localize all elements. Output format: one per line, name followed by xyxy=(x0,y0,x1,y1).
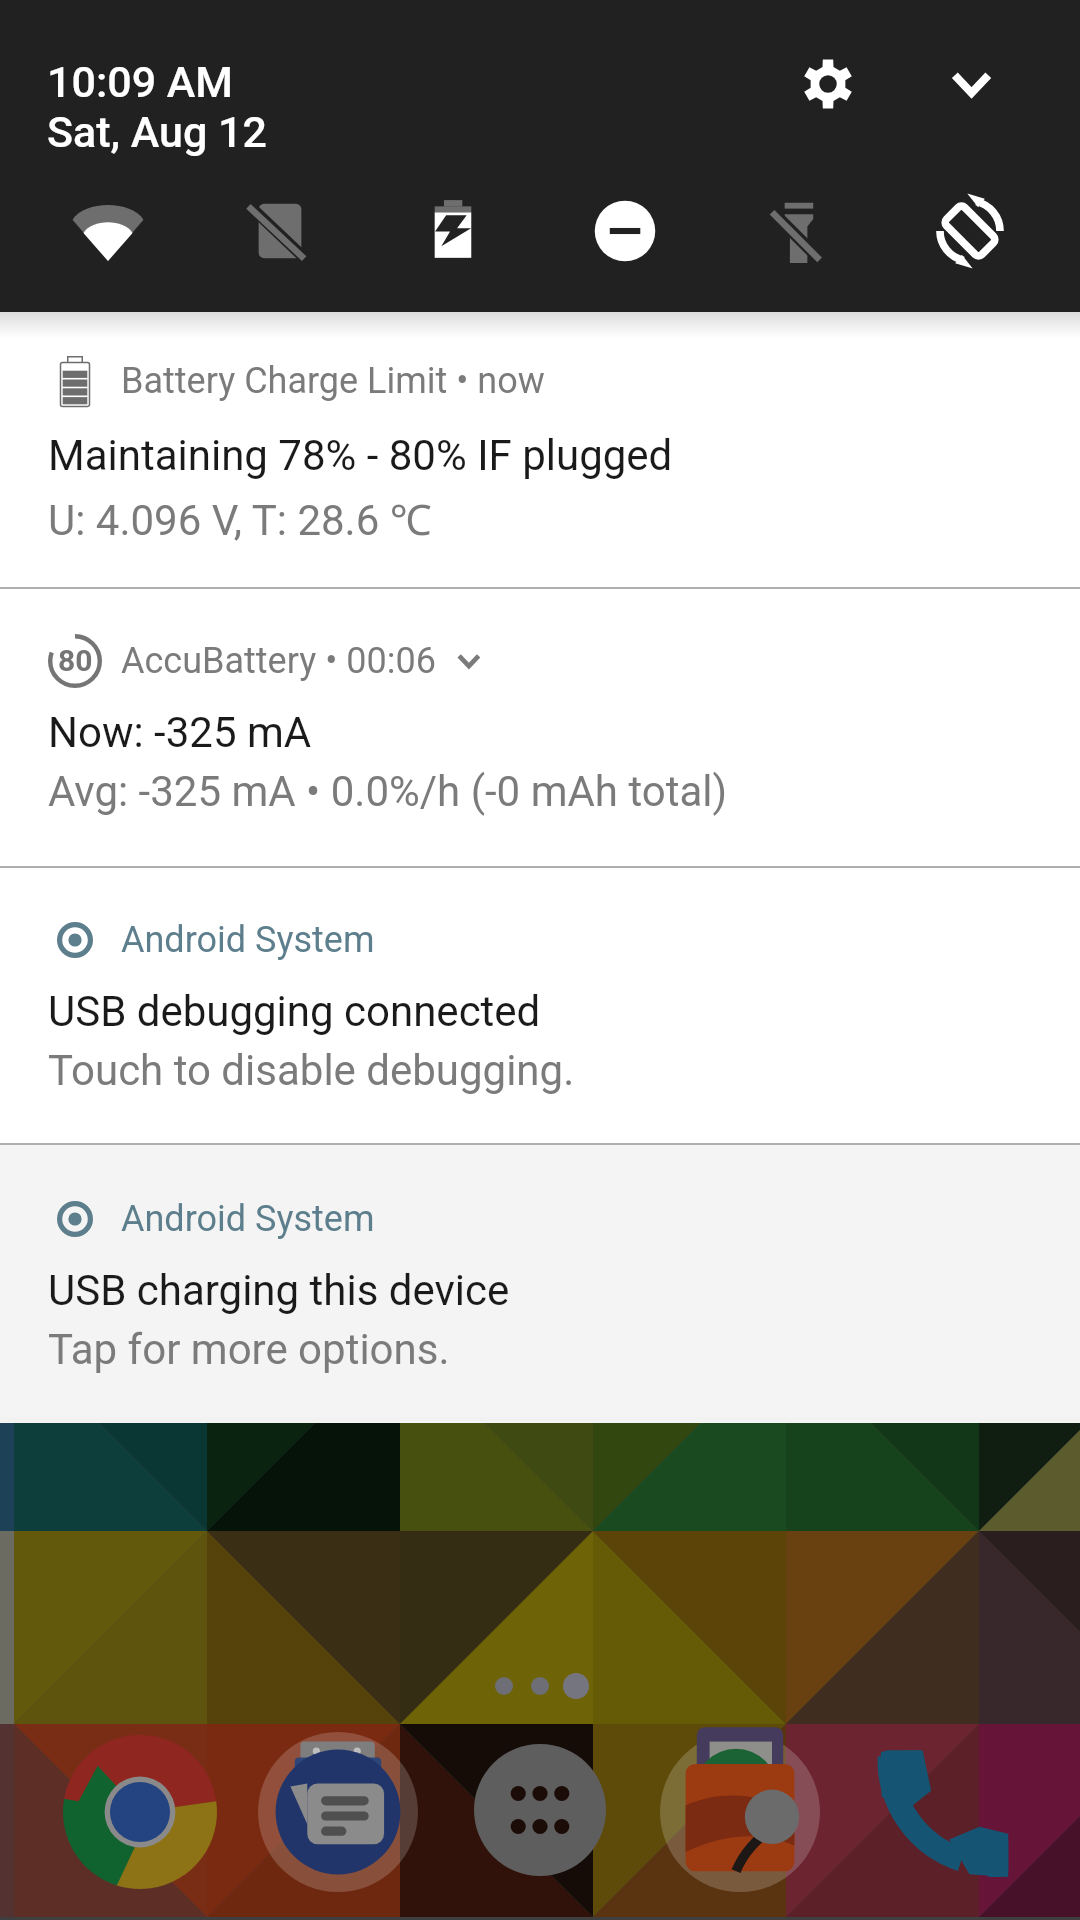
staticText: Sat, Aug 12 xyxy=(47,107,267,157)
staticText: AccuBattery • 00:06 xyxy=(121,640,436,682)
button[interactable]: Do not disturb xyxy=(567,173,683,289)
button[interactable]: Battery Charge Limit • now xyxy=(0,312,1080,587)
staticText: Now: -325 mA xyxy=(48,708,312,757)
button[interactable]: Android System xyxy=(0,868,1080,1143)
button[interactable]: Flashlight off xyxy=(739,173,855,289)
button[interactable]: Expand quick settings xyxy=(920,34,1020,134)
button[interactable]: Settings xyxy=(778,34,878,134)
staticText: Avg: -325 mA • 0.0%/h (-0 mAh total) xyxy=(48,767,728,816)
staticText: U: 4.096 V, T: 28.6 ℃ xyxy=(48,490,432,547)
staticText: USB debugging connected xyxy=(48,987,541,1036)
staticText: 80 xyxy=(58,643,93,678)
staticText: Maintaining 78% - 80% IF plugged xyxy=(48,431,673,480)
staticText: Tap for more options. xyxy=(48,1325,450,1374)
button[interactable]: Auto rotate xyxy=(912,173,1028,289)
button[interactable]: 80 xyxy=(0,589,1080,866)
button[interactable]: Battery xyxy=(394,173,510,289)
staticText: Android System xyxy=(121,919,375,961)
button[interactable]: Sound off xyxy=(222,173,338,289)
button[interactable]: Android System xyxy=(0,1145,1080,1423)
staticText: USB charging this device xyxy=(48,1266,510,1315)
staticText: Android System xyxy=(121,1198,375,1240)
button[interactable]: Wi-Fi xyxy=(50,173,166,289)
staticText: Touch to disable debugging. xyxy=(48,1046,575,1095)
staticText: 10:09 AM xyxy=(47,57,233,107)
staticText: Battery Charge Limit • now xyxy=(121,360,545,402)
